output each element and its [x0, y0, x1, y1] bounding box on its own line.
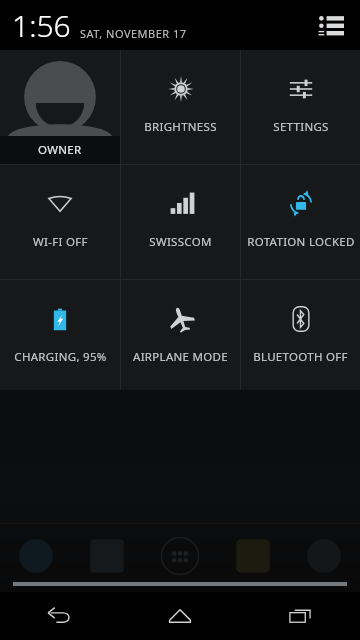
button[interactable]: Back: [0, 592, 120, 640]
staticText: CHARGING, 95%: [14, 349, 107, 365]
button[interactable]: User Owner: [0, 50, 120, 164]
staticText: SETTINGS: [273, 119, 329, 135]
staticText: WI-FI OFF: [33, 234, 88, 250]
button[interactable]: Notifications: [312, 6, 350, 44]
button[interactable]: Bluetooth off: [241, 280, 360, 390]
staticText: BRIGHTNESS: [144, 119, 217, 135]
button[interactable]: Wi-Fi off: [0, 165, 120, 279]
staticText: OWNER: [38, 142, 82, 158]
staticText: BLUETOOTH OFF: [253, 349, 348, 365]
staticText: AIRPLANE MODE: [133, 349, 228, 365]
button[interactable]: Recent apps: [240, 592, 360, 640]
button[interactable]: Brightness: [121, 50, 240, 164]
staticText: ROTATION LOCKED: [247, 234, 355, 250]
staticText: SWISSCOM: [149, 234, 212, 250]
button[interactable]: Mobile signal Swisscom: [121, 165, 240, 279]
staticText: 1:56: [12, 5, 71, 46]
button[interactable]: Home: [120, 592, 240, 640]
button[interactable]: Airplane mode: [121, 280, 240, 390]
button[interactable]: Battery charging 95 percent: [0, 280, 120, 390]
button[interactable]: Rotation locked: [241, 165, 360, 279]
staticText: SAT, NOVEMBER 17: [80, 26, 187, 41]
button[interactable]: Settings: [241, 50, 360, 164]
